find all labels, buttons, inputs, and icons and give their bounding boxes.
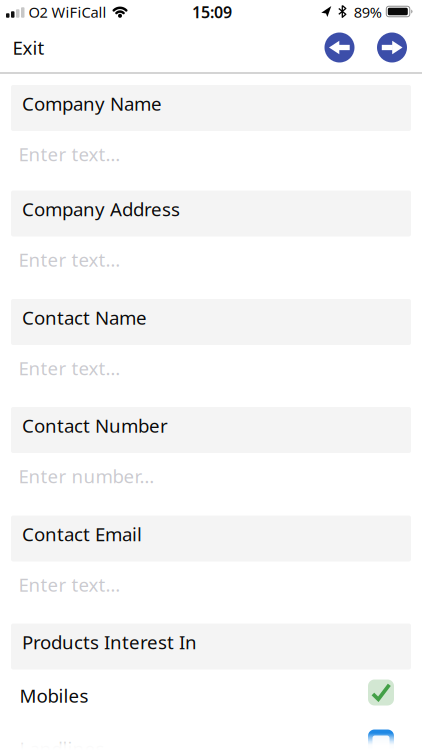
staticText: O2 WiFiCall	[28, 2, 106, 22]
staticText: 15:09	[192, 1, 232, 23]
button[interactable]: Enter number…	[0, 453, 422, 488]
staticText: Enter number…	[18, 463, 154, 488]
staticText: Enter text…	[18, 141, 120, 166]
staticText: Contact Email	[22, 522, 142, 546]
staticText: Enter text…	[18, 355, 120, 380]
staticText: Contact Number	[22, 413, 168, 438]
button[interactable]: Enter text…	[0, 561, 422, 597]
button[interactable]: Enter text…	[0, 131, 422, 166]
button[interactable]: Mobiles	[0, 669, 422, 719]
button[interactable]: Next	[377, 32, 407, 62]
button[interactable]: Enter text…	[0, 345, 422, 380]
button[interactable]: Previous	[324, 32, 354, 62]
button[interactable]: Landlines	[0, 719, 422, 750]
staticText: Company Name	[22, 91, 162, 116]
staticText: Enter text…	[18, 247, 120, 272]
staticText: Company Address	[22, 197, 180, 221]
staticText: Mobiles	[19, 683, 88, 708]
staticText: Exit	[12, 35, 44, 60]
button[interactable]: Exit	[12, 35, 44, 60]
staticText: 89%	[354, 2, 382, 22]
staticText: Enter text…	[18, 572, 120, 597]
staticText: Products Interest In	[22, 630, 197, 654]
button[interactable]: Enter text…	[0, 236, 422, 272]
staticText: Contact Name	[22, 305, 147, 330]
